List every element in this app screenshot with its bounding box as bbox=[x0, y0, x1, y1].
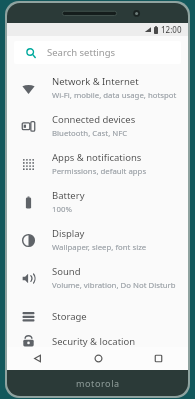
button[interactable]: Display bbox=[7, 221, 188, 259]
button[interactable]: Back bbox=[7, 347, 68, 370]
staticText: Search settings bbox=[47, 46, 116, 59]
button[interactable]: Sound bbox=[7, 259, 188, 297]
staticText: Wallpaper, sleep, font size bbox=[52, 242, 147, 253]
staticText: motorola bbox=[76, 377, 120, 389]
staticText: Bluetooth, Cast, NFC bbox=[52, 128, 128, 139]
staticText: Wi-Fi, mobile, data usage, hotspot bbox=[52, 90, 177, 101]
staticText: Sound bbox=[52, 265, 81, 278]
button[interactable]: Home bbox=[68, 347, 128, 370]
button[interactable]: Apps & notifications bbox=[7, 145, 188, 183]
button[interactable]: Battery bbox=[7, 183, 188, 221]
button[interactable]: Recent apps bbox=[128, 347, 188, 370]
button[interactable]: Storage bbox=[7, 297, 188, 335]
staticText: Battery bbox=[52, 189, 85, 202]
button[interactable]: Network & Internet bbox=[7, 69, 188, 107]
staticText: 12:00 bbox=[161, 24, 182, 35]
staticText: Permissions, default apps bbox=[52, 166, 147, 177]
staticText: Security & location bbox=[52, 335, 136, 347]
button[interactable]: Security & location bbox=[7, 335, 188, 347]
staticText: Apps & notifications bbox=[52, 151, 142, 164]
staticText: 100% bbox=[52, 204, 72, 215]
button[interactable]: Search settings bbox=[14, 41, 181, 64]
staticText: Volume, vibration, Do Not Disturb bbox=[52, 280, 176, 291]
staticText: Display bbox=[52, 227, 85, 240]
staticText: Connected devices bbox=[52, 113, 136, 126]
staticText: Storage bbox=[52, 310, 87, 323]
staticText: Network & Internet bbox=[52, 75, 139, 88]
button[interactable]: Connected devices bbox=[7, 107, 188, 145]
